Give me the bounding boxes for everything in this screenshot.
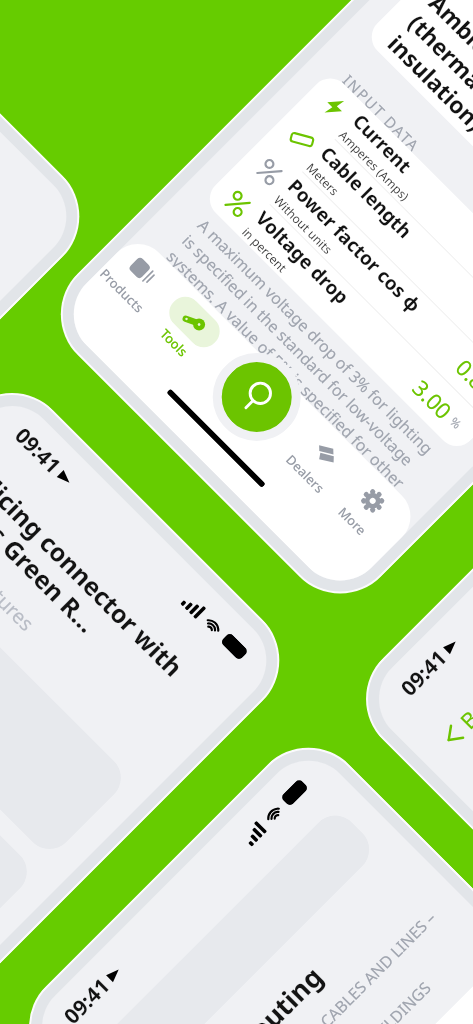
- staticText: Splicing connector with levers Green R..…: [0, 452, 220, 734]
- staticText: INPUT DATA: [339, 70, 424, 156]
- staticText: 09:41: [8, 421, 67, 480]
- staticText: in percent: [239, 224, 291, 275]
- staticText: 3.00: [407, 373, 459, 425]
- staticText: Products: [96, 265, 148, 317]
- staticText: Cable length: [315, 141, 418, 244]
- staticText: Tools: [156, 325, 192, 361]
- staticText: Amperes (Amps): [336, 127, 413, 204]
- staticText: Current: [347, 108, 418, 179]
- staticText: 09:41: [57, 972, 116, 1024]
- button[interactable]: More: [322, 465, 407, 550]
- staticText: Dealers: [282, 451, 329, 497]
- staticText: Installation in insulated walls. Conduct…: [308, 1004, 473, 1024]
- button[interactable]: Power factor cos φ: [233, 135, 473, 423]
- staticText: Power factor cos φ: [282, 173, 427, 318]
- staticText: More: [334, 503, 371, 539]
- button[interactable]: Products: [94, 237, 177, 320]
- staticText: Without units: [271, 192, 337, 258]
- button[interactable]: Back: [427, 671, 473, 761]
- staticText: Number: [463, 0, 473, 36]
- button[interactable]: Current: [298, 70, 473, 358]
- staticText: Back: [453, 679, 473, 735]
- staticText: A maximum voltage drop of 3% for lightin…: [146, 214, 442, 510]
- button[interactable]: Dealers: [276, 419, 361, 504]
- staticText: Types of routing: [149, 958, 330, 1024]
- button[interactable]: Cable length: [265, 103, 473, 391]
- staticText: Meters: [303, 159, 343, 199]
- staticText: Ambient temperature (thermal insulation): [381, 0, 473, 279]
- staticText: 0.80: [450, 352, 473, 405]
- staticText: %: [447, 413, 465, 432]
- staticText: TYPES OF ROUTING FOR CABLES AND LINES – …: [184, 902, 473, 1024]
- button[interactable]: Tools: [144, 287, 229, 372]
- staticText: Product features: [0, 507, 40, 637]
- button[interactable]: Voltage drop: [202, 168, 473, 454]
- staticText: 09:41: [394, 644, 453, 702]
- staticText: Voltage drop: [250, 205, 355, 310]
- button[interactable]: Search: [207, 347, 306, 446]
